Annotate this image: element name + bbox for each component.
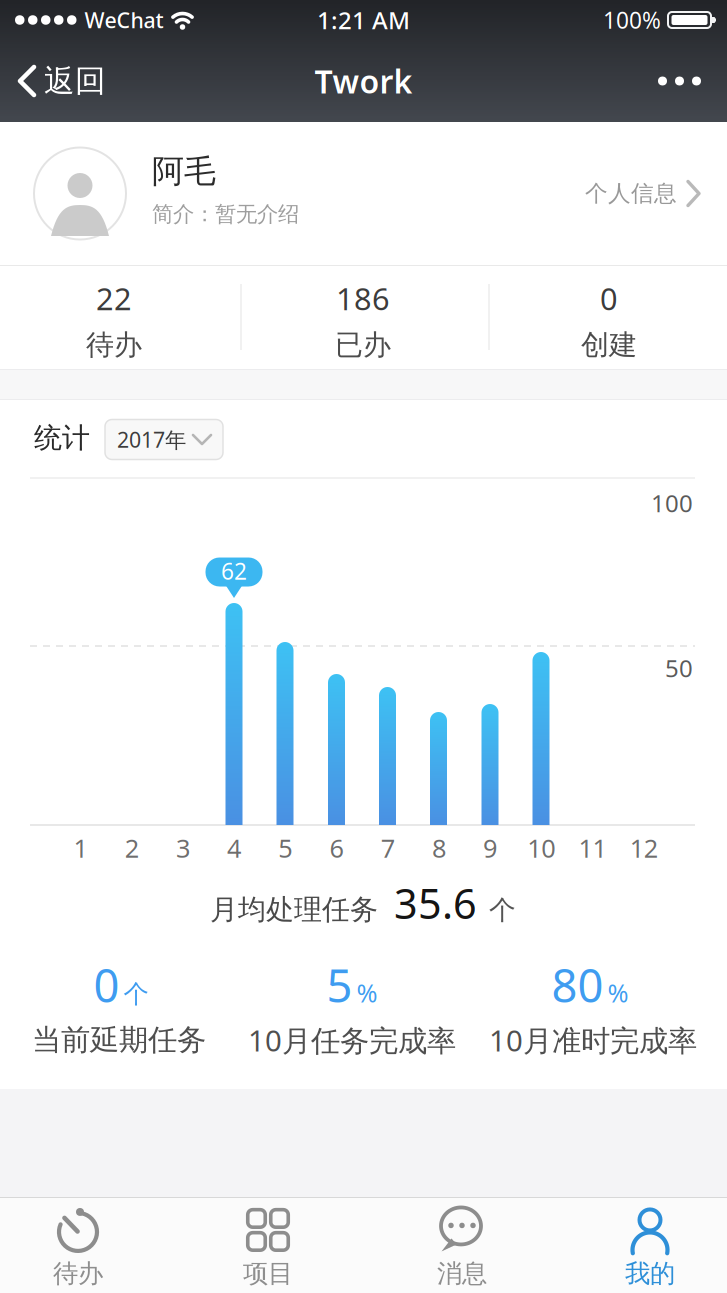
staticText: 186	[336, 278, 390, 319]
staticText: 100%	[603, 5, 661, 35]
staticText: 35.6	[394, 876, 477, 930]
staticText: 0	[93, 955, 119, 1015]
staticText: 待办	[86, 328, 142, 362]
staticText: %	[607, 976, 628, 1009]
staticText: 10月准时完成率	[489, 1020, 697, 1059]
staticText: 创建	[581, 328, 637, 362]
staticText: 当前延期任务	[32, 1022, 206, 1058]
staticText: 2	[125, 831, 139, 865]
button[interactable]: 阿毛	[0, 122, 727, 265]
staticText: 个	[489, 894, 516, 927]
button[interactable]: 2017年	[105, 419, 223, 459]
button[interactable]: More	[658, 76, 701, 85]
staticText: 11	[578, 831, 606, 865]
staticText: 简介：暂无介绍	[152, 201, 299, 227]
staticText: 22	[96, 278, 132, 319]
button[interactable]: 项目	[193, 1207, 343, 1289]
button[interactable]: 待办	[3, 1207, 153, 1289]
staticText: 消息	[437, 1258, 487, 1289]
staticText: 8	[432, 831, 446, 865]
button[interactable]: 返回	[18, 62, 106, 100]
staticText: 5	[278, 831, 292, 865]
staticText: Twork	[314, 60, 412, 102]
staticText: 50	[665, 652, 693, 684]
staticText: 统计	[34, 421, 90, 455]
staticText: 10月任务完成率	[248, 1020, 456, 1059]
staticText: WeChat	[84, 6, 163, 34]
staticText: 2017年	[117, 425, 186, 454]
staticText: 3	[176, 831, 190, 865]
staticText: 0	[600, 278, 618, 319]
staticText: 1:21 AM	[317, 4, 410, 36]
staticText: 月均处理任务	[210, 892, 378, 927]
staticText: 7	[381, 831, 395, 865]
button[interactable]: 消息	[387, 1207, 537, 1289]
staticText: 9	[483, 831, 497, 865]
staticText: 1	[73, 831, 87, 865]
staticText: 12	[630, 831, 658, 865]
staticText: 4	[227, 831, 241, 865]
staticText: 已办	[335, 328, 391, 362]
staticText: 80	[551, 955, 603, 1015]
staticText: 6	[329, 831, 343, 865]
staticText: 个人信息	[585, 180, 677, 207]
staticText: 阿毛	[152, 152, 216, 191]
staticText: 项目	[243, 1258, 293, 1289]
staticText: %	[356, 976, 377, 1009]
staticText: 62	[221, 556, 247, 586]
staticText: 个	[123, 979, 148, 1010]
button[interactable]: 我的	[575, 1207, 725, 1289]
staticText: 我的	[625, 1258, 675, 1289]
staticText: 返回	[44, 62, 106, 100]
staticText: 10	[527, 831, 555, 865]
staticText: 5	[326, 955, 352, 1015]
staticText: 待办	[53, 1258, 103, 1289]
staticText: 100	[651, 487, 693, 519]
